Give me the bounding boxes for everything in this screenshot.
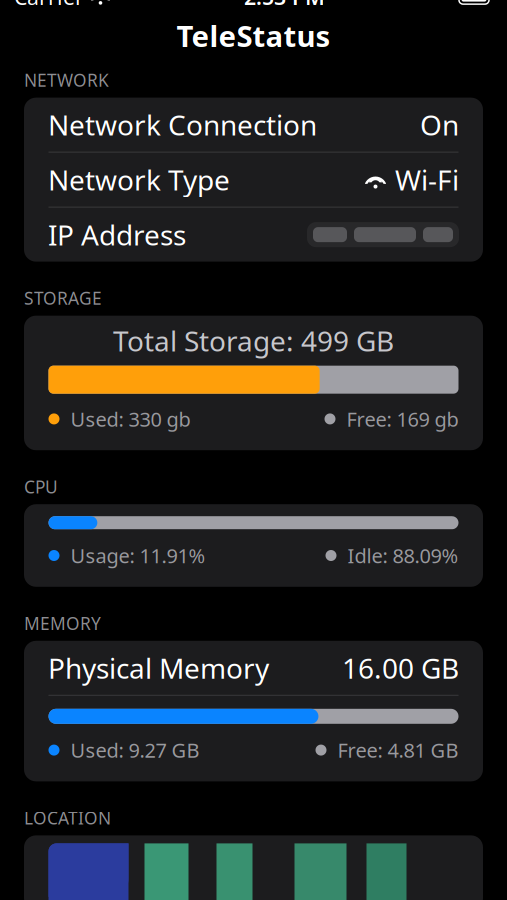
staticText: Physical Memory (48, 649, 269, 686)
button[interactable]: Network Connection (24, 98, 483, 152)
staticText: On (420, 106, 459, 143)
staticText: Carson City (316, 773, 428, 799)
staticText: Used: 330 gb (70, 406, 190, 432)
staticText: MEMORY (24, 612, 101, 635)
staticText: TeleStatus (176, 16, 330, 55)
staticText: Wi-Fi (395, 161, 459, 198)
staticText: Free: 4.81 GB (337, 737, 458, 763)
staticText: Free: 169 gb (346, 406, 458, 432)
staticText: LOCATION (24, 806, 111, 829)
staticText: Network Type (48, 161, 230, 198)
staticText: Network Connection (48, 106, 317, 143)
button[interactable]: Network Type (24, 153, 483, 207)
staticText: 16.00 GB (342, 649, 459, 686)
staticText: 2:53 PM (244, 0, 325, 11)
staticText: STORAGE (24, 287, 102, 310)
staticText: IP Address (48, 216, 186, 253)
staticText: Usage: 11.91% (70, 542, 205, 569)
staticText: Idle: 88.09% (347, 542, 458, 569)
staticText: Total Storage: 499 GB (113, 322, 394, 359)
staticText: CPU (24, 475, 58, 498)
staticText: Used: 9.27 GB (70, 737, 199, 763)
button[interactable]: IP Address (24, 208, 483, 262)
staticText: Carrier (14, 0, 84, 11)
button[interactable]: Physical Memory (24, 641, 483, 695)
staticText: NETWORK (24, 69, 109, 92)
